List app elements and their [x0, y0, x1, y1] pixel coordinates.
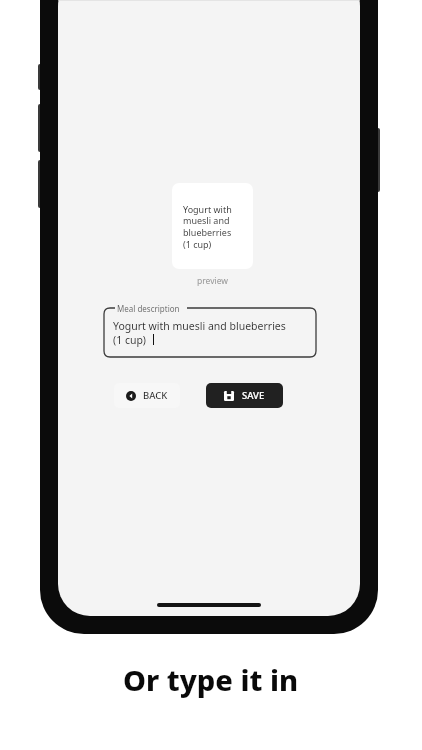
button[interactable]: Yogurt with muesli and blueberries (1 cu…	[172, 183, 253, 269]
staticText: BACK	[143, 389, 168, 402]
staticText: SAVE	[242, 389, 265, 402]
staticText: Yogurt with muesli and blueberries (1 cu…	[183, 203, 232, 251]
staticText: Meal description	[117, 303, 180, 314]
staticText: Or type it in	[123, 660, 299, 699]
staticText: preview	[197, 275, 229, 287]
button[interactable]: SAVE	[206, 383, 283, 408]
staticText: Yogurt with muesli and blueberries (1 cu…	[113, 319, 286, 347]
button[interactable]: BACK	[114, 383, 180, 408]
